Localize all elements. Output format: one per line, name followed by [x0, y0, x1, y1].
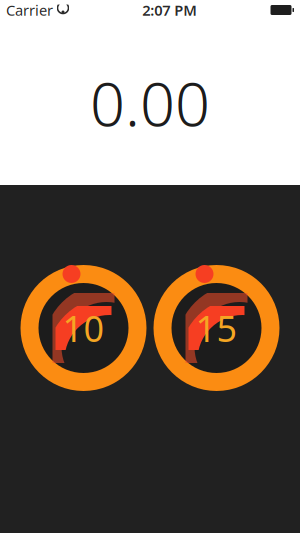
button[interactable]: Timer 10 minutes — [20, 265, 146, 391]
staticText: Carrier — [6, 0, 53, 20]
button[interactable]: Timer 15 minutes — [153, 265, 279, 391]
staticText: 15 — [195, 304, 237, 352]
staticText: 0.00 — [90, 62, 210, 143]
staticText: 2:07 PM — [142, 0, 197, 20]
staticText: 10 — [62, 304, 104, 352]
